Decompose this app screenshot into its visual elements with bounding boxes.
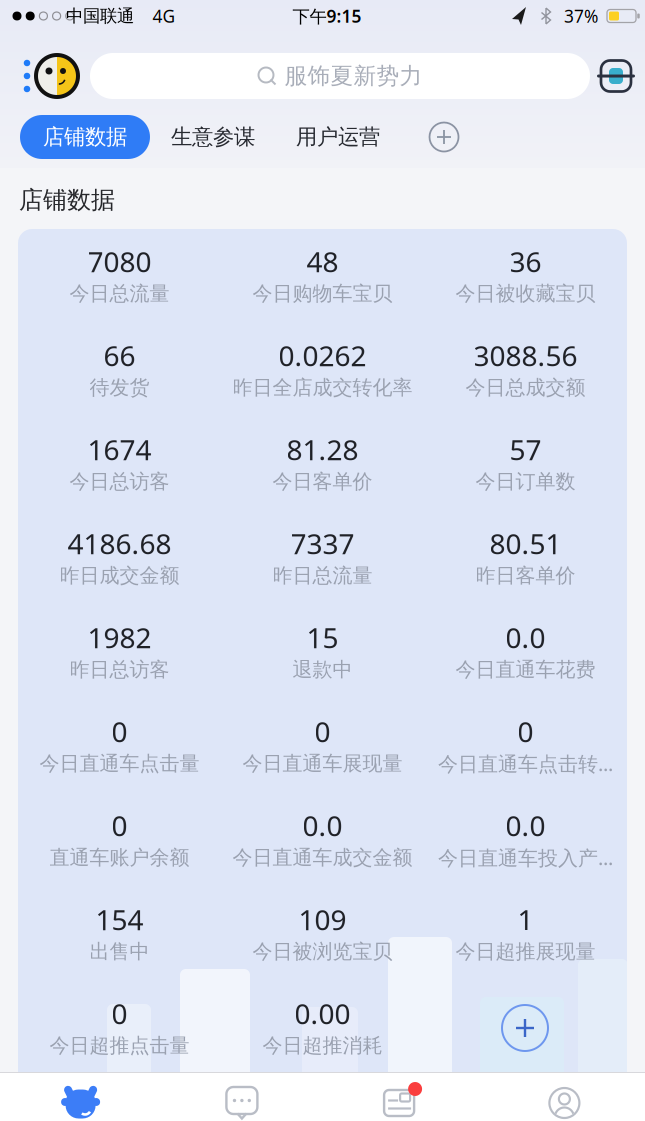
staticText: 4G <box>152 4 175 27</box>
staticText: 店铺数据 <box>43 124 127 150</box>
button[interactable]: 服饰夏新势力 <box>90 53 590 99</box>
staticText: 今日总成交额 <box>465 375 585 400</box>
staticText: 15 <box>306 619 338 656</box>
staticText: 0.0 <box>302 807 342 844</box>
staticText: 服饰夏新势力 <box>284 62 422 90</box>
staticText: 0 <box>111 995 127 1032</box>
staticText: 直通车账户余额 <box>49 845 189 870</box>
staticText: 66 <box>103 337 135 374</box>
staticText: 今日购物车宝贝 <box>252 281 392 306</box>
staticText: 109 <box>298 901 346 938</box>
button[interactable] <box>597 58 635 94</box>
staticText: 0.0 <box>505 619 545 656</box>
staticText: 今日总流量 <box>69 281 169 306</box>
staticText: 今日订单数 <box>475 469 575 494</box>
button[interactable] <box>323 1080 484 1121</box>
staticText: 今日超推消耗 <box>262 1033 382 1058</box>
staticText: 80.51 <box>489 525 561 562</box>
staticText: 0 <box>517 713 533 750</box>
staticText: 37% <box>564 4 598 27</box>
staticText: 0.0262 <box>278 337 366 374</box>
staticText: 0.0 <box>505 807 545 844</box>
staticText: 用户运营 <box>296 124 380 150</box>
button[interactable] <box>484 1080 645 1121</box>
staticText: 1982 <box>87 619 151 656</box>
button[interactable]: 店铺数据 <box>20 115 150 159</box>
staticText: 3088.56 <box>473 337 577 374</box>
staticText: 36 <box>509 243 541 280</box>
staticText: 0 <box>111 807 127 844</box>
staticText: 今日超推点击量 <box>49 1033 189 1058</box>
staticText: 店铺数据 <box>19 185 115 215</box>
staticText: 中国联通 <box>66 5 134 27</box>
staticText: 1 <box>517 901 533 938</box>
staticText: 1674 <box>87 431 151 468</box>
staticText: 今日直通车点击转... <box>438 750 613 777</box>
staticText: 0 <box>111 713 127 750</box>
staticText: 昨日成交金额 <box>59 563 179 588</box>
staticText: 154 <box>95 901 143 938</box>
staticText: 今日超推展现量 <box>455 939 595 964</box>
staticText: 下午9:15 <box>292 4 361 27</box>
button[interactable] <box>34 53 80 99</box>
staticText: 0.00 <box>294 995 350 1032</box>
button[interactable] <box>161 1080 322 1121</box>
staticText: 今日总访客 <box>69 469 169 494</box>
staticText: 昨日客单价 <box>475 563 575 588</box>
button[interactable] <box>502 1005 548 1051</box>
staticText: 退款中 <box>292 657 352 682</box>
staticText: 生意参谋 <box>171 124 255 150</box>
staticText: 0 <box>314 713 330 750</box>
button[interactable]: 用户运营 <box>296 124 380 150</box>
staticText: 今日客单价 <box>272 469 372 494</box>
staticText: 昨日总流量 <box>272 563 372 588</box>
staticText: 今日直通车投入产... <box>438 844 613 871</box>
staticText: 今日直通车花费 <box>455 657 595 682</box>
staticText: 昨日全店成交转化率 <box>232 375 412 400</box>
staticText: 今日直通车展现量 <box>242 751 402 776</box>
staticText: 4186.68 <box>67 525 171 562</box>
staticText: 昨日总访客 <box>69 657 169 682</box>
staticText: 今日被浏览宝贝 <box>252 939 392 964</box>
staticText: 出售中 <box>89 939 149 964</box>
staticText: 今日直通车点击量 <box>39 751 199 776</box>
staticText: 待发货 <box>89 375 149 400</box>
staticText: 7337 <box>290 525 354 562</box>
staticText: 今日被收藏宝贝 <box>455 281 595 306</box>
staticText: 81.28 <box>286 431 358 468</box>
staticText: 7080 <box>87 243 151 280</box>
staticText: 48 <box>306 243 338 280</box>
staticText: 57 <box>509 431 541 468</box>
staticText: 今日直通车成交金额 <box>232 845 412 870</box>
button[interactable] <box>0 1080 161 1121</box>
button[interactable]: 生意参谋 <box>171 124 255 150</box>
button[interactable] <box>429 122 458 151</box>
